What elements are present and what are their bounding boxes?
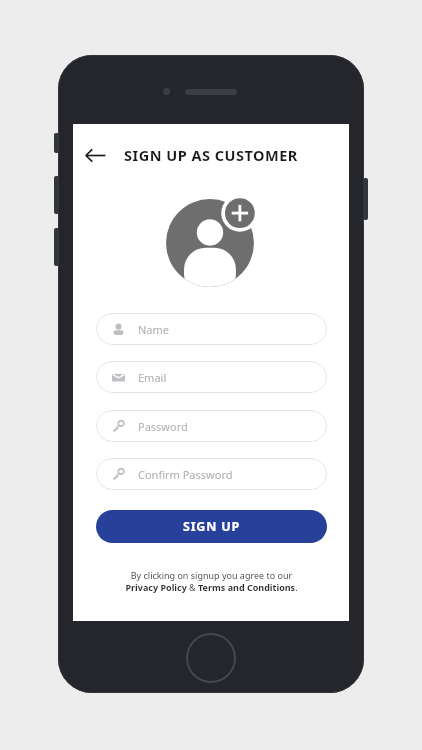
staticText: Password xyxy=(138,419,188,434)
staticText: Name xyxy=(138,322,170,337)
button[interactable]: Back xyxy=(79,139,111,171)
button[interactable]: Email xyxy=(96,361,327,393)
button[interactable]: SIGN UP xyxy=(96,510,327,543)
button[interactable]: Password xyxy=(96,410,327,442)
staticText: SIGN UP AS CUSTOMER xyxy=(124,145,298,165)
staticText: Confirm Password xyxy=(138,467,233,482)
staticText: By clicking on signup you agree to our P… xyxy=(125,569,298,594)
staticText: Email xyxy=(138,370,167,385)
button[interactable]: Confirm Password xyxy=(96,458,327,490)
button[interactable]: Add profile photo xyxy=(166,195,258,287)
button[interactable]: Name xyxy=(96,313,327,345)
staticText: SIGN UP xyxy=(183,518,241,535)
